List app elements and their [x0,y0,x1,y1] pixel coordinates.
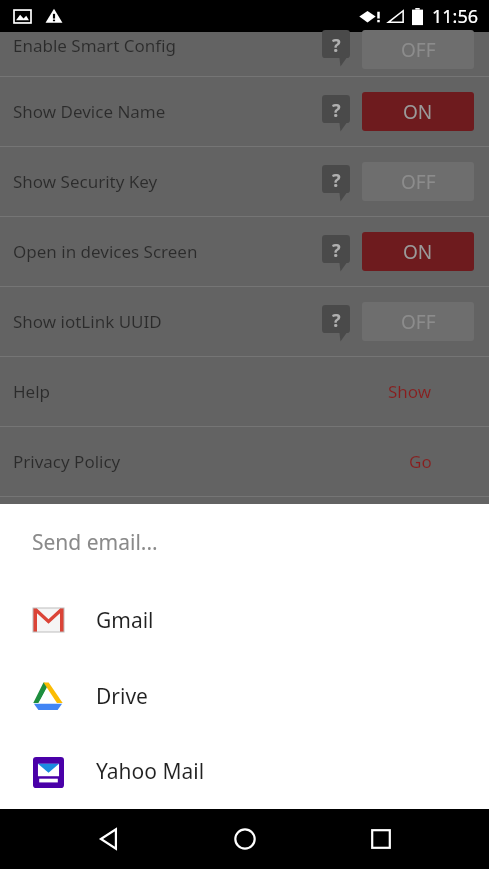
button[interactable]: Help [322,165,350,199]
button[interactable]: Help [322,95,350,129]
button[interactable]: Help [0,357,489,426]
button[interactable]: Back [80,811,136,867]
staticText: Open in devices Screen [13,240,198,263]
staticText: ? [332,168,341,193]
staticText: ? [332,238,341,263]
staticText: ON [403,239,433,265]
staticText: OFF [401,37,436,63]
staticText: Enable Smart Config [13,34,176,57]
staticText: ? [332,33,341,58]
staticText: Go [409,450,432,473]
button[interactable]: Show Device Name [0,77,489,146]
button[interactable]: Drive [0,658,489,734]
staticText: Show Device Name [13,100,166,123]
staticText: Privacy Policy [13,450,121,473]
button[interactable]: ON [362,92,474,131]
staticText: ? [332,308,341,333]
staticText: ON [403,99,433,125]
button[interactable]: Yahoo Mail [0,734,489,809]
button[interactable]: Recent apps [353,811,409,867]
staticText: ? [332,98,341,123]
staticText: Yahoo Mail [96,757,205,786]
staticText: Show [388,380,432,403]
button[interactable]: ON [362,232,474,271]
button[interactable]: OFF [362,162,474,201]
button[interactable]: Open in devices Screen [0,217,489,286]
staticText: Drive [96,682,148,711]
button[interactable]: OFF [362,302,474,341]
button[interactable]: Help [322,305,350,339]
staticText: Show Security Key [13,170,158,193]
button[interactable]: Gmail [0,582,489,658]
staticText: Show iotLink UUID [13,310,162,333]
button[interactable]: Show Security Key [0,147,489,216]
button[interactable]: Enable Smart Config [0,32,489,76]
staticText: OFF [401,309,436,335]
button[interactable]: Privacy Policy [0,427,489,496]
button[interactable]: Help [322,30,350,64]
staticText: Help [13,380,51,403]
staticText: Gmail [96,606,154,635]
staticText: 11:56 [432,4,479,29]
button[interactable]: OFF [362,30,474,69]
button[interactable]: Show iotLink UUID [0,287,489,356]
staticText: Send email... [32,528,158,557]
button[interactable]: Home [217,811,273,867]
button[interactable]: Help [322,235,350,269]
staticText: OFF [401,169,436,195]
